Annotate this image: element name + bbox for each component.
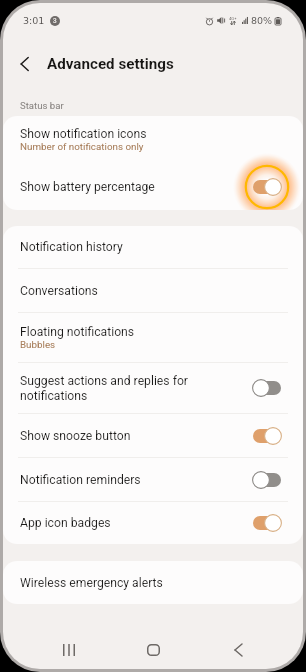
button[interactable]: Switch on <box>245 414 289 457</box>
button[interactable]: Conversations <box>3 269 303 312</box>
button[interactable]: Notification reminders <box>3 458 303 501</box>
staticText: Conversations <box>20 284 98 298</box>
button[interactable]: Switch off <box>245 458 289 501</box>
button[interactable]: Back <box>216 628 260 669</box>
staticText: Suggest actions and replies for notifica… <box>20 374 188 403</box>
button[interactable]: Wireless emergency alerts <box>3 561 303 604</box>
staticText: Show snooze button <box>20 429 131 443</box>
staticText: Floating notifications <box>20 325 135 339</box>
button[interactable]: Suggest actions and replies for notifica… <box>3 363 303 413</box>
button[interactable]: Notification history <box>3 226 303 268</box>
button[interactable]: Floating notifications <box>3 313 303 362</box>
staticText: Show notification icons <box>20 127 147 141</box>
staticText: Status bar <box>20 100 64 111</box>
staticText: Wireless emergency alerts <box>20 576 163 590</box>
staticText: 4G+ <box>229 16 237 21</box>
staticText: Bubbles <box>20 339 56 350</box>
button[interactable]: Recent apps <box>47 628 91 669</box>
staticText: App icon badges <box>20 516 111 530</box>
button[interactable]: Show battery percentage <box>3 163 303 210</box>
staticText: Advanced settings <box>47 55 174 73</box>
button[interactable]: Switch off <box>245 366 289 410</box>
staticText: Notification history <box>20 240 123 254</box>
button[interactable]: Navigate up <box>3 42 47 86</box>
button[interactable]: Show snooze button <box>3 414 303 457</box>
button[interactable]: App icon badges <box>3 502 303 544</box>
button[interactable]: Switch on <box>245 502 289 544</box>
staticText: 80% <box>251 15 273 26</box>
staticText: 3:01 <box>23 15 45 26</box>
staticText: Notification reminders <box>20 473 141 487</box>
staticText: 3 <box>53 17 57 25</box>
staticText: Number of notifications only <box>20 141 144 152</box>
staticText: Show battery percentage <box>20 180 155 194</box>
button[interactable]: Home <box>131 628 175 669</box>
button[interactable]: Switch on <box>245 165 289 209</box>
button[interactable]: Show notification icons <box>3 116 303 163</box>
